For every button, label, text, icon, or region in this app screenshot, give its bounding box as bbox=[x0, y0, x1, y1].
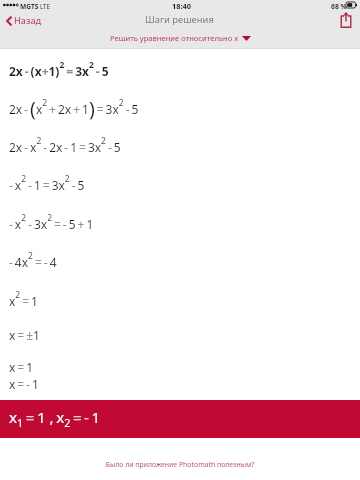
staticText: x2 = 1 bbox=[9, 289, 38, 310]
staticText: LTE bbox=[40, 2, 50, 10]
staticText: 18:40 bbox=[172, 1, 191, 11]
staticText: 2x - (x+1)2 = 3x2 - 5 bbox=[9, 59, 109, 80]
staticText: MGTS bbox=[20, 2, 39, 11]
staticText: x = 1 bbox=[9, 359, 34, 375]
staticText: x1 = 1 , x2 = - 1 bbox=[9, 407, 101, 431]
staticText: - 4x2 = - 4 bbox=[9, 250, 57, 271]
staticText: - x2 - 3x2 = - 5 + 1 bbox=[9, 212, 94, 233]
staticText: 2x - x2 - 2x - 1 = 3x2 - 5 bbox=[9, 135, 121, 156]
button[interactable]: Назад bbox=[2, 12, 50, 30]
staticText: Шаги решения bbox=[145, 13, 214, 26]
staticText: x = - 1 bbox=[9, 376, 39, 392]
staticText: Назад bbox=[14, 14, 42, 27]
button[interactable]: Share bbox=[337, 9, 355, 30]
staticText: Решить уравнение относительно x bbox=[110, 33, 239, 43]
button[interactable]: x1 = 1 , x2 = - 1 bbox=[0, 400, 360, 438]
button[interactable]: Решить уравнение относительно x bbox=[106, 31, 255, 45]
staticText: 68 % bbox=[331, 2, 347, 11]
staticText: 2x - (x2 + 2x + 1) = 3x2 - 5 bbox=[9, 95, 139, 121]
staticText: x = ±1 bbox=[9, 327, 40, 343]
button[interactable]: Было ли приложение Photomath полезным? bbox=[0, 455, 360, 474]
staticText: - x2 - 1 = 3x2 - 5 bbox=[9, 173, 85, 194]
